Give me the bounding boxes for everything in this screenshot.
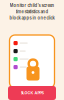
staticText: BLOCK APPS: [20, 91, 43, 95]
button[interactable]: BLOCK APPS: [8, 86, 56, 100]
staticText: block apps in one click: [9, 15, 54, 20]
staticText: Monitor child's screen: [9, 3, 54, 8]
staticText: time statistics and: [15, 9, 48, 14]
